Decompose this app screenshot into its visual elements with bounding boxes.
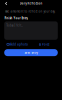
button[interactable]: Back <box>0 1 9 6</box>
button[interactable]: Save Entry <box>0 49 62 56</box>
staticText: Today I felt… <box>6 24 23 27</box>
staticText: Finish Your Entry <box>4 16 28 20</box>
staticText: Voice <box>42 43 50 46</box>
staticText: Take a moment to reflect on your day. <box>5 10 56 13</box>
button[interactable]: Add a photo <box>4 42 31 47</box>
button[interactable]: Voice <box>31 42 58 47</box>
staticText: Add a photo <box>10 43 28 46</box>
staticText: Daily Reflection <box>19 2 42 5</box>
staticText: Save Entry <box>24 51 37 54</box>
